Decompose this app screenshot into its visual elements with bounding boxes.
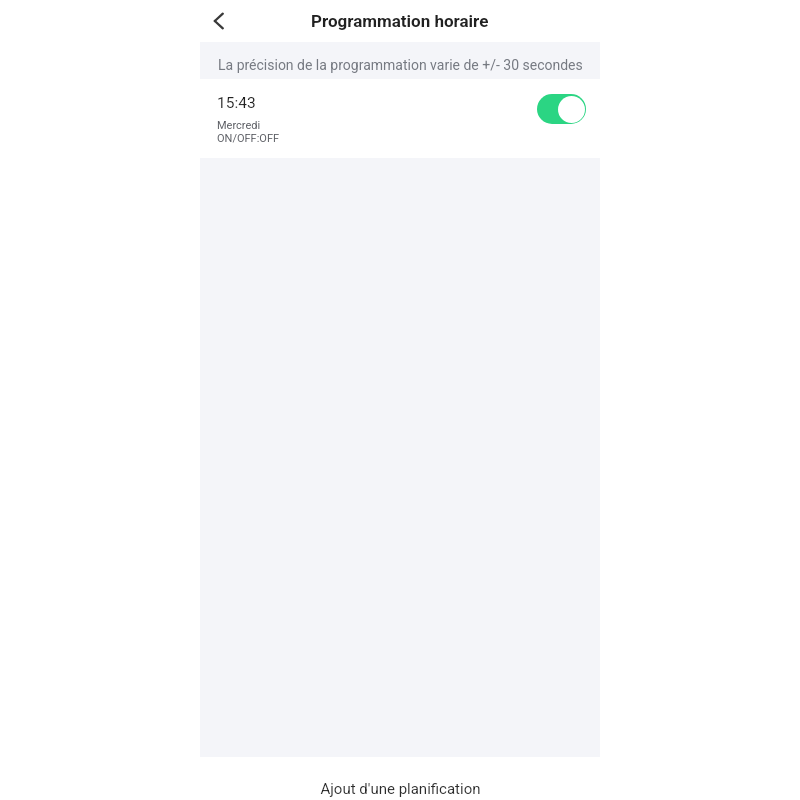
staticText: Mercredi (217, 119, 261, 132)
button[interactable]: 15:43 (200, 79, 600, 158)
button[interactable]: Ajout d'une planification (0, 757, 800, 800)
button[interactable]: Back (202, 4, 236, 38)
staticText: ON/OFF:OFF (217, 132, 280, 145)
staticText: Ajout d'une planification (320, 780, 481, 798)
staticText: 15:43 (217, 94, 256, 112)
staticText: Programmation horaire (311, 11, 489, 31)
staticText: La précision de la programmation varie d… (218, 57, 583, 73)
button[interactable]: Toggle schedule (537, 94, 586, 124)
